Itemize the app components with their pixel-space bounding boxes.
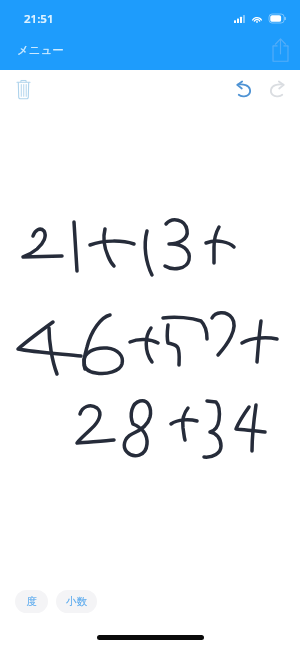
staticText: 度 [26,595,37,608]
button[interactable]: メニュー [10,38,71,62]
button[interactable]: Undo [229,75,257,103]
button[interactable]: Redo [263,75,291,103]
button[interactable] [0,107,300,585]
button[interactable]: Delete [7,73,39,105]
button[interactable]: 小数 [56,590,97,613]
button[interactable]: Share [263,33,297,67]
button[interactable]: 度 [15,590,48,613]
staticText: メニュー [17,43,64,57]
staticText: 小数 [66,595,87,608]
staticText: 21:51 [24,11,54,27]
